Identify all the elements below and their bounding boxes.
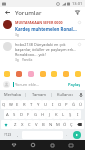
- staticText: I: [77, 112, 79, 118]
- button[interactable]: Kullanıcı: [52, 90, 77, 99]
- button[interactable]: Shift: [1, 120, 11, 129]
- button[interactable]: Y: [35, 100, 42, 109]
- button[interactable]: Ö: [61, 120, 68, 129]
- button[interactable]: H: [39, 110, 46, 119]
- button[interactable]: clap: [74, 70, 82, 78]
- staticText: Ö: [63, 122, 67, 128]
- button[interactable]: C: [26, 120, 33, 129]
- button[interactable]: Z: [11, 120, 19, 129]
- button[interactable]: fire: [15, 70, 23, 78]
- button[interactable]: Recents: [47, 140, 57, 150]
- staticText: C: [28, 122, 31, 128]
- button[interactable]: Back: [9, 140, 19, 150]
- staticText: ?123: [4, 132, 12, 137]
- staticText: 3g: [15, 58, 19, 62]
- button[interactable]: F: [25, 110, 32, 119]
- button[interactable]: U: [42, 100, 49, 109]
- button[interactable]: Backspace: [75, 120, 84, 129]
- button[interactable]: blush: [27, 70, 35, 78]
- button[interactable]: Filter: [73, 8, 82, 17]
- staticText: Ğ: [72, 102, 76, 108]
- button[interactable]: I: [49, 100, 56, 109]
- staticText: R: [23, 102, 26, 108]
- button[interactable]: Back: [3, 8, 12, 17]
- button[interactable]: X: [19, 120, 26, 129]
- button[interactable]: S: [11, 110, 18, 119]
- button[interactable]: Keyboard: [66, 140, 76, 150]
- staticText: Merhaba: [4, 92, 21, 97]
- button[interactable]: Yanıtla: [22, 58, 33, 62]
- button[interactable]: K: [53, 110, 60, 119]
- button[interactable]: D: [18, 110, 25, 119]
- button[interactable]: Ü: [77, 100, 84, 109]
- button[interactable]: R: [21, 100, 28, 109]
- button[interactable]: Voice input: [77, 90, 85, 99]
- button[interactable]: ,: [15, 130, 21, 139]
- staticText: Ü: [79, 102, 83, 108]
- staticText: Y: [37, 102, 40, 108]
- staticText: F: [27, 112, 30, 118]
- staticText: Yorumlar: [15, 9, 42, 17]
- button[interactable]: Ç: [68, 120, 75, 129]
- staticText: I: [52, 102, 54, 108]
- button[interactable]: B: [40, 120, 47, 129]
- button[interactable]: I: [74, 110, 81, 119]
- button[interactable]: Send: [73, 131, 81, 139]
- button[interactable]: Q: [1, 100, 7, 109]
- button[interactable]: J: [46, 110, 53, 119]
- button[interactable]: MUSTAFAKAAN SEFER 0000: [0, 18, 85, 39]
- button[interactable]: G: [32, 110, 39, 119]
- button[interactable]: .: [64, 130, 70, 139]
- button[interactable]: Tamam: [26, 90, 51, 99]
- button[interactable]: P: [63, 100, 70, 109]
- staticText: .: [66, 132, 68, 137]
- button[interactable]: Like: [77, 20, 82, 25]
- staticText: Tamam: [32, 92, 46, 97]
- button[interactable]: sad: [62, 70, 70, 78]
- staticText: M: [56, 122, 60, 128]
- staticText: Kullanıcı: [57, 92, 73, 97]
- button[interactable]: Merhaba: [0, 90, 25, 99]
- staticText: A: [6, 112, 9, 118]
- button[interactable]: Yorum ekle...: [15, 82, 67, 87]
- button[interactable]: L: [60, 110, 67, 119]
- staticText: L: [62, 112, 65, 118]
- staticText: Kardeş muhtemelen Ronaldo!: [15, 26, 77, 32]
- button[interactable]: wow: [50, 70, 58, 78]
- staticText: K: [55, 112, 58, 118]
- button[interactable]: M: [54, 120, 61, 129]
- staticText: J: [49, 112, 51, 118]
- button[interactable]: Ğ: [70, 100, 77, 109]
- button[interactable]: N: [47, 120, 54, 129]
- button[interactable]: W: [7, 100, 14, 109]
- staticText: ,: [17, 132, 19, 137]
- button[interactable]: heart: [3, 70, 11, 78]
- staticText: D: [20, 112, 24, 118]
- staticText: U: [44, 102, 48, 108]
- button[interactable]: ?123: [1, 130, 15, 139]
- staticText: O: [58, 102, 62, 108]
- button[interactable]: hobo2138 Dünyadaki en çok: [0, 40, 85, 64]
- staticText: H: [41, 112, 45, 118]
- button[interactable]: E: [14, 100, 21, 109]
- button[interactable]: A: [4, 110, 11, 119]
- staticText: S: [13, 112, 16, 118]
- staticText: P: [65, 102, 68, 108]
- button[interactable]: O: [56, 100, 63, 109]
- staticText: başarılar, ödüller ve paylaşım erkek: [15, 47, 77, 52]
- staticText: X: [21, 122, 24, 128]
- staticText: V: [35, 122, 38, 128]
- button[interactable]: T: [28, 100, 35, 109]
- staticText: 13:01: [72, 1, 83, 6]
- staticText: W: [9, 102, 13, 108]
- button[interactable]: Like: [77, 42, 82, 47]
- staticText: B: [42, 122, 45, 128]
- button[interactable]: Home: [28, 140, 38, 150]
- staticText: E: [16, 102, 19, 108]
- button[interactable]: Ş: [67, 110, 74, 119]
- button[interactable]: Paylaş: [67, 82, 82, 87]
- button[interactable]: laugh: [39, 70, 47, 78]
- button[interactable]: V: [33, 120, 40, 129]
- staticText: N: [49, 122, 53, 128]
